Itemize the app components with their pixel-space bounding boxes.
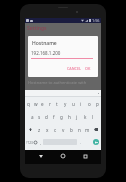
- button[interactable]: q: [25, 97, 32, 110]
- button[interactable]: u: [69, 97, 77, 110]
- button[interactable]: x: [43, 123, 51, 136]
- button[interactable]: Home: [57, 150, 69, 162]
- staticText: e: [41, 101, 44, 107]
- button[interactable]: Shift: [26, 123, 35, 136]
- staticText: k: [84, 114, 87, 120]
- button[interactable]: l: [89, 110, 97, 123]
- staticText: q: [27, 101, 30, 107]
- staticText: Hostname to authenticate with: [28, 80, 87, 85]
- button[interactable]: b: [67, 123, 75, 136]
- staticText: t: [56, 101, 58, 107]
- button[interactable]: m: [83, 123, 91, 136]
- staticText: w: [34, 101, 38, 107]
- button[interactable]: f: [50, 110, 57, 123]
- staticText: CANCEL: [67, 66, 81, 71]
- staticText: OK: [85, 66, 91, 71]
- button[interactable]: ,: [38, 136, 43, 149]
- staticText: r: [49, 101, 51, 107]
- staticText: 192.168.1.200: [31, 50, 61, 56]
- button[interactable]: j: [73, 110, 81, 123]
- button[interactable]: OK: [83, 64, 93, 73]
- staticText: x: [46, 127, 49, 133]
- button[interactable]: g: [57, 110, 65, 123]
- button[interactable]: e: [39, 97, 46, 110]
- button[interactable]: a: [29, 110, 36, 123]
- button[interactable]: w: [32, 97, 39, 110]
- staticText: d: [45, 114, 48, 120]
- button[interactable]: Backspace: [91, 123, 100, 136]
- staticText: l: [92, 114, 94, 120]
- staticText: ,: [40, 140, 42, 145]
- staticText: u: [72, 101, 75, 107]
- staticText: i: [80, 101, 82, 107]
- button[interactable]: Recents: [79, 150, 91, 162]
- staticText: Settings: [27, 25, 47, 32]
- staticText: n: [78, 127, 81, 133]
- button[interactable]: k: [81, 110, 89, 123]
- button[interactable]: Back: [35, 150, 47, 162]
- staticText: a: [31, 114, 34, 120]
- button[interactable]: p: [93, 97, 101, 110]
- staticText: g: [60, 114, 63, 120]
- staticText: h: [68, 114, 71, 120]
- staticText: f: [53, 114, 55, 120]
- button[interactable]: v: [59, 123, 67, 136]
- staticText: ?123: [26, 141, 33, 145]
- staticText: o: [88, 101, 91, 107]
- staticText: b: [70, 127, 73, 133]
- button[interactable]: r: [46, 97, 53, 110]
- button[interactable]: t: [53, 97, 61, 110]
- button[interactable]: c: [51, 123, 59, 136]
- staticText: j: [76, 114, 78, 120]
- button[interactable]: CANCEL: [65, 64, 83, 73]
- button[interactable]: o: [85, 97, 93, 110]
- button[interactable]: h: [65, 110, 73, 123]
- button[interactable]: z: [35, 123, 43, 136]
- staticText: z: [38, 127, 41, 133]
- button[interactable]: Enter: [93, 139, 99, 145]
- button[interactable]: i: [77, 97, 85, 110]
- staticText: .: [80, 140, 82, 145]
- staticText: s: [38, 114, 41, 120]
- staticText: c: [54, 127, 57, 133]
- button[interactable]: Emoji: [33, 136, 38, 149]
- staticText: y: [64, 101, 67, 107]
- button[interactable]: y: [61, 97, 69, 110]
- button[interactable]: d: [43, 110, 50, 123]
- button[interactable]: ?123: [26, 136, 33, 149]
- staticText: p: [96, 101, 99, 107]
- staticText: m: [85, 127, 90, 133]
- staticText: Hostname: [32, 40, 57, 47]
- staticText: v: [62, 127, 65, 133]
- staticText: 1:56: [92, 18, 100, 23]
- button[interactable]: s: [36, 110, 43, 123]
- button[interactable]: n: [75, 123, 83, 136]
